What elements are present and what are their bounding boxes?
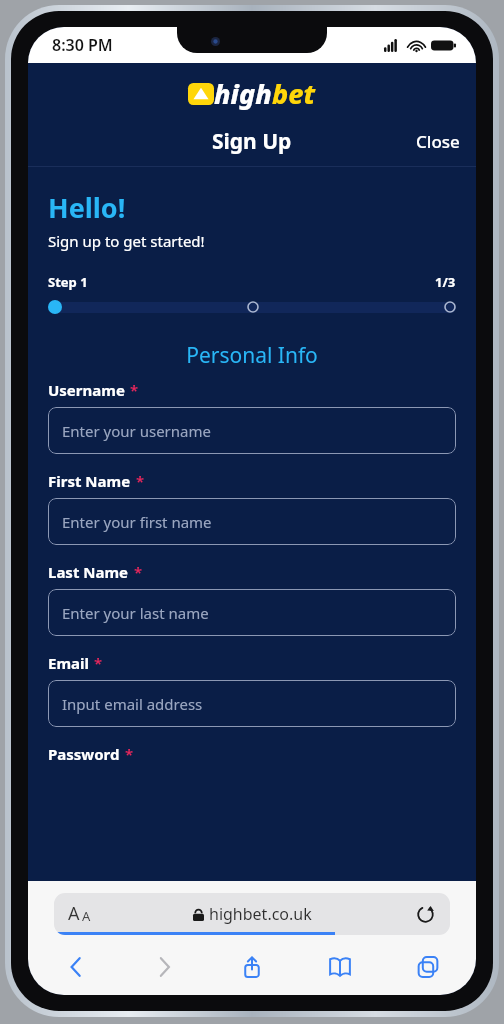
button[interactable]: Bookmarks <box>318 945 362 989</box>
staticText: Enter your username <box>62 421 211 441</box>
button[interactable]: Tabs <box>406 945 450 989</box>
staticText: Input email address <box>62 694 203 714</box>
other: Reload <box>417 906 434 923</box>
staticText: Enter your last name <box>62 603 209 623</box>
button[interactable]: Back <box>54 945 98 989</box>
button[interactable]: Forward <box>142 945 186 989</box>
button[interactable]: Share <box>230 945 274 989</box>
staticText: high <box>214 75 272 112</box>
staticText: * <box>130 380 139 400</box>
button[interactable]: A <box>54 893 450 935</box>
staticText: Password <box>48 744 120 764</box>
button[interactable]: Input email address <box>48 680 456 727</box>
staticText: Sign Up <box>212 127 292 156</box>
staticText: Sign up to get started! <box>48 231 205 251</box>
staticText: Hello! <box>48 189 126 226</box>
staticText: Email <box>48 653 89 673</box>
staticText: highbet.co.uk <box>209 903 312 925</box>
staticText: * <box>134 562 143 582</box>
button[interactable]: Close <box>400 126 476 157</box>
staticText: 8:30 PM <box>52 34 113 56</box>
staticText: Close <box>416 130 460 153</box>
staticText: Username <box>48 380 125 400</box>
staticText: A <box>82 907 91 925</box>
staticText: * <box>136 471 145 491</box>
button[interactable]: Enter your last name <box>48 589 456 636</box>
staticText: First Name <box>48 471 131 491</box>
button[interactable]: Enter your username <box>48 407 456 454</box>
staticText: 1/3 <box>435 273 456 291</box>
staticText: Personal Info <box>48 341 456 370</box>
staticText: Last Name <box>48 562 129 582</box>
staticText: Step 1 <box>48 273 88 291</box>
staticText: * <box>94 653 103 673</box>
staticText: bet <box>272 75 316 112</box>
staticText: * <box>125 744 134 764</box>
staticText: Enter your first name <box>62 512 212 532</box>
staticText: A <box>68 901 80 926</box>
button[interactable]: Enter your first name <box>48 498 456 545</box>
